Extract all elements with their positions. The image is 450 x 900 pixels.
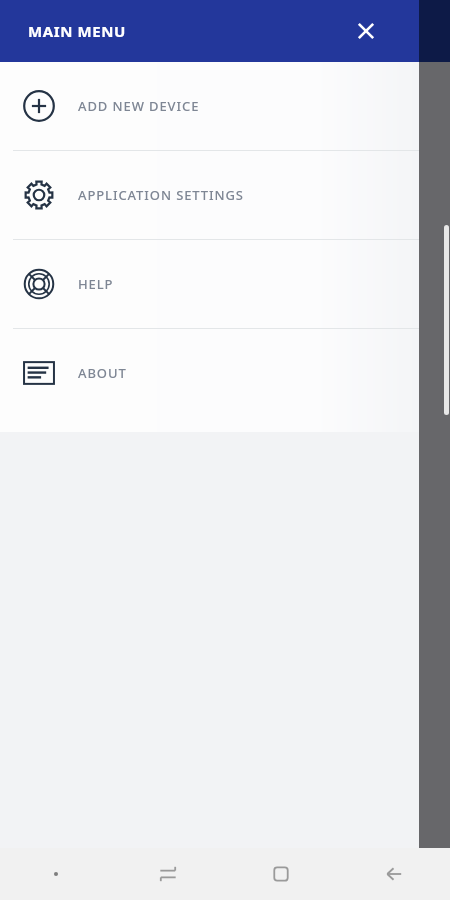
button[interactable]: ABOUT bbox=[0, 329, 419, 417]
button[interactable]: ADD NEW DEVICE bbox=[0, 62, 419, 150]
staticText: ABOUT bbox=[78, 364, 127, 382]
staticText: ADD NEW DEVICE bbox=[78, 97, 200, 115]
button[interactable]: Close menu bbox=[349, 14, 383, 48]
staticText: APPLICATION SETTINGS bbox=[78, 186, 244, 204]
staticText: MAIN MENU bbox=[28, 21, 126, 41]
button[interactable]: Assistant bbox=[0, 848, 112, 900]
button[interactable]: Recents bbox=[224, 848, 337, 900]
button[interactable]: APPLICATION SETTINGS bbox=[0, 151, 419, 239]
button[interactable]: Switch apps bbox=[112, 848, 224, 900]
staticText: HELP bbox=[78, 275, 114, 293]
button[interactable]: HELP bbox=[0, 240, 419, 328]
button[interactable]: Back bbox=[337, 848, 450, 900]
